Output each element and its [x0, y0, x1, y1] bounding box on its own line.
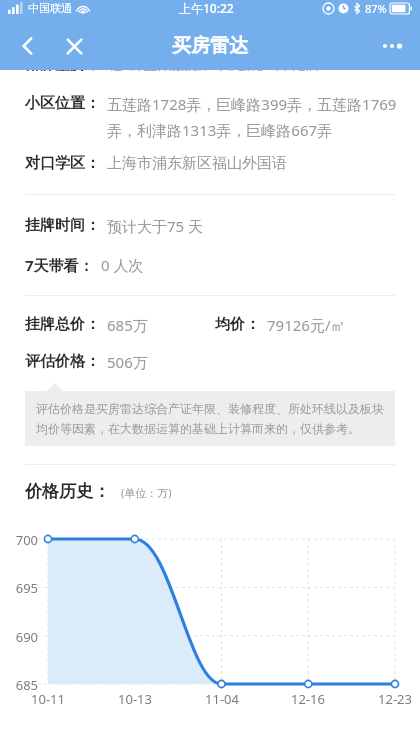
- staticText: 价格历史：: [25, 481, 110, 502]
- staticText: 11-04: [198, 690, 246, 708]
- staticText: 买房雷达: [172, 34, 248, 58]
- staticText: 中国联通: [28, 1, 72, 15]
- staticText: 0 人次: [101, 255, 144, 275]
- button[interactable]: Back: [8, 26, 48, 66]
- staticText: 评估价格：: [25, 352, 100, 371]
- staticText: 7天带看：: [25, 255, 94, 275]
- staticText: 上海市浦东新区福山外国语: [107, 154, 287, 173]
- staticText: 695: [0, 579, 38, 597]
- staticText: 挂牌时间：: [25, 216, 100, 235]
- staticText: 79126元/㎡: [267, 315, 346, 335]
- button[interactable]: More options: [372, 26, 412, 66]
- staticText: 预计大于75 天: [107, 216, 204, 236]
- staticText: 挂牌总价：: [25, 315, 100, 334]
- staticText: 浦东(福山外国语)东校区（总部）: [108, 70, 328, 71]
- staticText: 所在学区：: [25, 70, 100, 71]
- staticText: 685万: [107, 315, 148, 335]
- staticText: 10-13: [111, 690, 159, 708]
- staticText: 685: [0, 676, 38, 694]
- staticText: 小区位置：: [25, 94, 100, 113]
- staticText: 评估价格是买房雷达综合产证年限、装修程度、所处环线以及板块均价等因素，在大数据运…: [36, 401, 384, 436]
- staticText: 10-11: [24, 690, 72, 708]
- staticText: 690: [0, 628, 38, 646]
- staticText: 87%: [365, 1, 387, 16]
- staticText: (单位：万): [121, 485, 172, 500]
- staticText: 均价：: [215, 315, 260, 334]
- staticText: 对口学区：: [25, 154, 100, 173]
- staticText: 12-16: [284, 690, 332, 708]
- staticText: 上午10:22: [179, 0, 234, 16]
- staticText: 12-23: [371, 690, 419, 708]
- staticText: 700: [0, 531, 38, 549]
- staticText: 506万: [107, 352, 148, 372]
- button[interactable]: Close: [54, 26, 94, 66]
- staticText: 五莲路1728弄，巨峰路399弄，五莲路1769弄，利津路1313弄，巨峰路66…: [107, 94, 398, 140]
